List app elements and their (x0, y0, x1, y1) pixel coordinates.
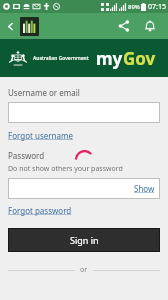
button[interactable]: Notifications (138, 13, 162, 39)
staticText: 89% (128, 3, 140, 11)
staticText: Australian Government (33, 55, 89, 62)
staticText: Password (8, 150, 45, 161)
button[interactable] (8, 102, 160, 123)
button[interactable]: Sign in (8, 228, 160, 252)
staticText: Sign in (70, 234, 99, 246)
staticText: Forgot password (8, 205, 72, 216)
button[interactable]: Back (0, 13, 20, 39)
button[interactable]: Show (134, 183, 155, 194)
staticText: Username or email (8, 87, 80, 98)
staticText: Show (134, 183, 155, 194)
staticText: or (80, 265, 88, 275)
staticText: my (96, 47, 123, 70)
staticText: Do not show others your password (8, 164, 123, 174)
staticText: Gov (123, 47, 156, 70)
button[interactable]: Share (112, 13, 136, 39)
button[interactable]: Forgot password (8, 205, 72, 216)
staticText: 07:15 (148, 2, 166, 12)
staticText: Forgot username (8, 130, 73, 141)
button[interactable]: Show (8, 178, 160, 199)
button[interactable]: Forgot username (8, 130, 73, 141)
